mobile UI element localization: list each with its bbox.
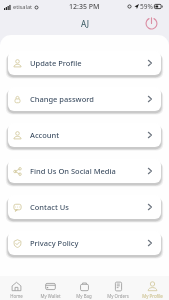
staticText: 59% xyxy=(140,2,153,11)
button[interactable]: My Profile xyxy=(135,276,169,300)
staticText: AJ xyxy=(81,18,89,29)
button[interactable]: Home xyxy=(0,276,33,300)
staticText: 12:35 PM xyxy=(69,2,100,12)
button[interactable]: My Orders xyxy=(101,276,135,300)
staticText: My Orders xyxy=(107,293,129,299)
staticText: Account xyxy=(30,130,60,140)
button[interactable]: Change password xyxy=(8,87,161,111)
staticText: Change password xyxy=(30,94,94,104)
staticText: Find Us On Social Media xyxy=(30,166,116,176)
staticText: Privacy Policy xyxy=(30,238,79,248)
staticText: My Profile xyxy=(142,293,163,299)
button[interactable]: Contact Us xyxy=(8,195,161,219)
button[interactable]: My Bag xyxy=(67,276,101,300)
button[interactable]: My Wallet xyxy=(33,276,67,300)
staticText: My Wallet xyxy=(40,293,61,299)
staticText: Home xyxy=(10,293,23,299)
button[interactable]: Privacy Policy xyxy=(8,231,161,255)
button[interactable]: Logout xyxy=(143,15,159,31)
staticText: Contact Us xyxy=(30,202,69,212)
staticText: etisalat xyxy=(13,3,33,11)
button[interactable]: Account xyxy=(8,123,161,147)
staticText: Update Profile xyxy=(30,58,82,68)
staticText: My Bag xyxy=(76,293,92,299)
button[interactable]: Find Us On Social Media xyxy=(8,159,161,183)
button[interactable]: Update Profile xyxy=(8,51,161,75)
